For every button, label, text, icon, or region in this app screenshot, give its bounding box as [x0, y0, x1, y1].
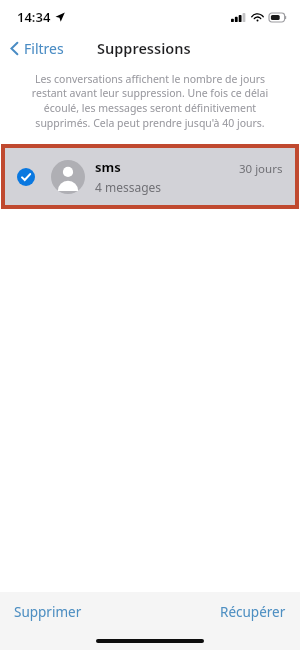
- staticText: Filtres: [24, 39, 64, 58]
- other: Back: [10, 41, 19, 56]
- staticText: Récupérer: [220, 603, 286, 621]
- button[interactable]: Back: [0, 35, 72, 62]
- staticText: 4 messages: [95, 179, 162, 195]
- staticText: 14:34: [17, 8, 51, 26]
- other: Selected: [17, 168, 35, 186]
- staticText: sms: [95, 158, 121, 176]
- staticText: 30 jours: [239, 161, 283, 177]
- staticText: Suppressions: [97, 38, 191, 58]
- button[interactable]: Selected: [5, 148, 295, 205]
- button[interactable]: Récupérer: [206, 595, 300, 629]
- staticText: Les conversations affichent le nombre de…: [16, 72, 284, 130]
- button[interactable]: Supprimer: [0, 595, 96, 629]
- staticText: Supprimer: [14, 603, 82, 621]
